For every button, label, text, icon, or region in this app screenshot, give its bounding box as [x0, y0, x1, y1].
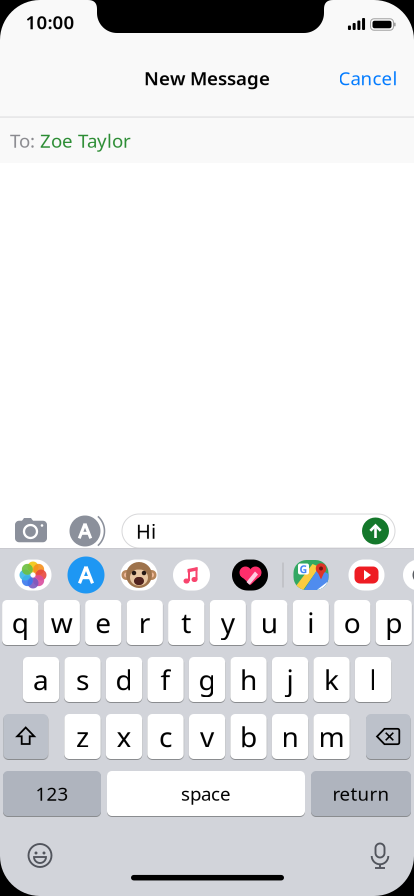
- button[interactable]: YouTube: [348, 559, 384, 590]
- staticText: g: [198, 661, 215, 698]
- button[interactable]: b: [230, 714, 267, 759]
- staticText: o: [344, 604, 361, 641]
- button[interactable]: Animoji: [120, 559, 157, 590]
- button[interactable]: a: [23, 657, 59, 702]
- staticText: 10:00: [25, 10, 74, 34]
- button[interactable]: x: [106, 714, 142, 759]
- button[interactable]: h: [230, 657, 267, 702]
- staticText: p: [385, 604, 402, 641]
- staticText: j: [286, 661, 293, 698]
- staticText: a: [33, 661, 49, 698]
- button[interactable]: e: [85, 600, 121, 645]
- button[interactable]: t: [168, 600, 204, 645]
- staticText: t: [181, 604, 191, 641]
- staticText: r: [139, 604, 151, 641]
- staticText: u: [261, 604, 278, 641]
- staticText: 123: [35, 781, 68, 806]
- button[interactable]: l: [355, 657, 391, 702]
- button[interactable]: To:: [0, 118, 414, 163]
- button[interactable]: s: [64, 657, 101, 702]
- staticText: z: [76, 718, 89, 755]
- staticText: d: [115, 661, 132, 698]
- button[interactable]: Camera: [14, 516, 48, 544]
- button[interactable]: space: [107, 771, 305, 816]
- staticText: b: [240, 718, 257, 755]
- button[interactable]: Photos: [14, 559, 51, 590]
- button[interactable]: z: [64, 714, 101, 759]
- button[interactable]: Emoji: [28, 844, 51, 867]
- button[interactable]: q: [2, 600, 38, 645]
- button[interactable]: 123: [3, 771, 101, 816]
- button[interactable]: d: [106, 657, 142, 702]
- staticText: s: [76, 661, 89, 698]
- button[interactable]: f: [147, 657, 184, 702]
- button[interactable]: w: [44, 600, 80, 645]
- button[interactable]: i: [293, 600, 329, 645]
- staticText: q: [12, 604, 29, 641]
- staticText: return: [332, 781, 389, 806]
- button[interactable]: o: [334, 600, 370, 645]
- button[interactable]: j: [272, 657, 308, 702]
- button[interactable]: Send: [362, 517, 389, 544]
- staticText: h: [240, 661, 257, 698]
- staticText: Hi: [136, 518, 156, 544]
- staticText: m: [318, 718, 344, 755]
- staticText: f: [160, 661, 170, 698]
- button[interactable]: iMessage apps: [69, 515, 100, 546]
- button[interactable]: Cancel: [338, 66, 397, 90]
- staticText: k: [324, 661, 339, 698]
- staticText: l: [369, 661, 376, 698]
- button[interactable]: Digital Touch: [232, 559, 268, 590]
- button[interactable]: p: [376, 600, 412, 645]
- button[interactable]: c: [147, 714, 184, 759]
- button[interactable]: r: [127, 600, 163, 645]
- button[interactable]: u: [251, 600, 287, 645]
- staticText: Cancel: [338, 66, 397, 90]
- button[interactable]: Maps: [293, 560, 328, 590]
- staticText: c: [159, 718, 172, 755]
- button[interactable]: return: [311, 771, 411, 816]
- staticText: space: [181, 781, 231, 806]
- button[interactable]: Delete: [366, 714, 410, 759]
- button[interactable]: Dictation: [369, 842, 391, 868]
- staticText: To:: [10, 128, 35, 153]
- button[interactable]: g: [189, 657, 225, 702]
- staticText: n: [281, 718, 298, 755]
- staticText: G: [299, 562, 307, 576]
- button[interactable]: k: [313, 657, 350, 702]
- button[interactable]: More apps: [403, 559, 414, 590]
- button[interactable]: m: [313, 714, 350, 759]
- staticText: w: [51, 604, 73, 641]
- staticText: e: [95, 604, 111, 641]
- button[interactable]: v: [189, 714, 225, 759]
- staticText: x: [116, 718, 131, 755]
- button[interactable]: n: [272, 714, 308, 759]
- button[interactable]: Music: [173, 559, 210, 590]
- staticText: New Message: [144, 66, 270, 90]
- button[interactable]: y: [210, 600, 246, 645]
- button[interactable]: App Store: [67, 556, 104, 593]
- button[interactable]: Shift: [3, 714, 48, 759]
- staticText: y: [221, 604, 235, 641]
- staticText: v: [200, 718, 214, 755]
- staticText: i: [307, 604, 314, 641]
- staticText: Zoe Taylor: [40, 128, 131, 153]
